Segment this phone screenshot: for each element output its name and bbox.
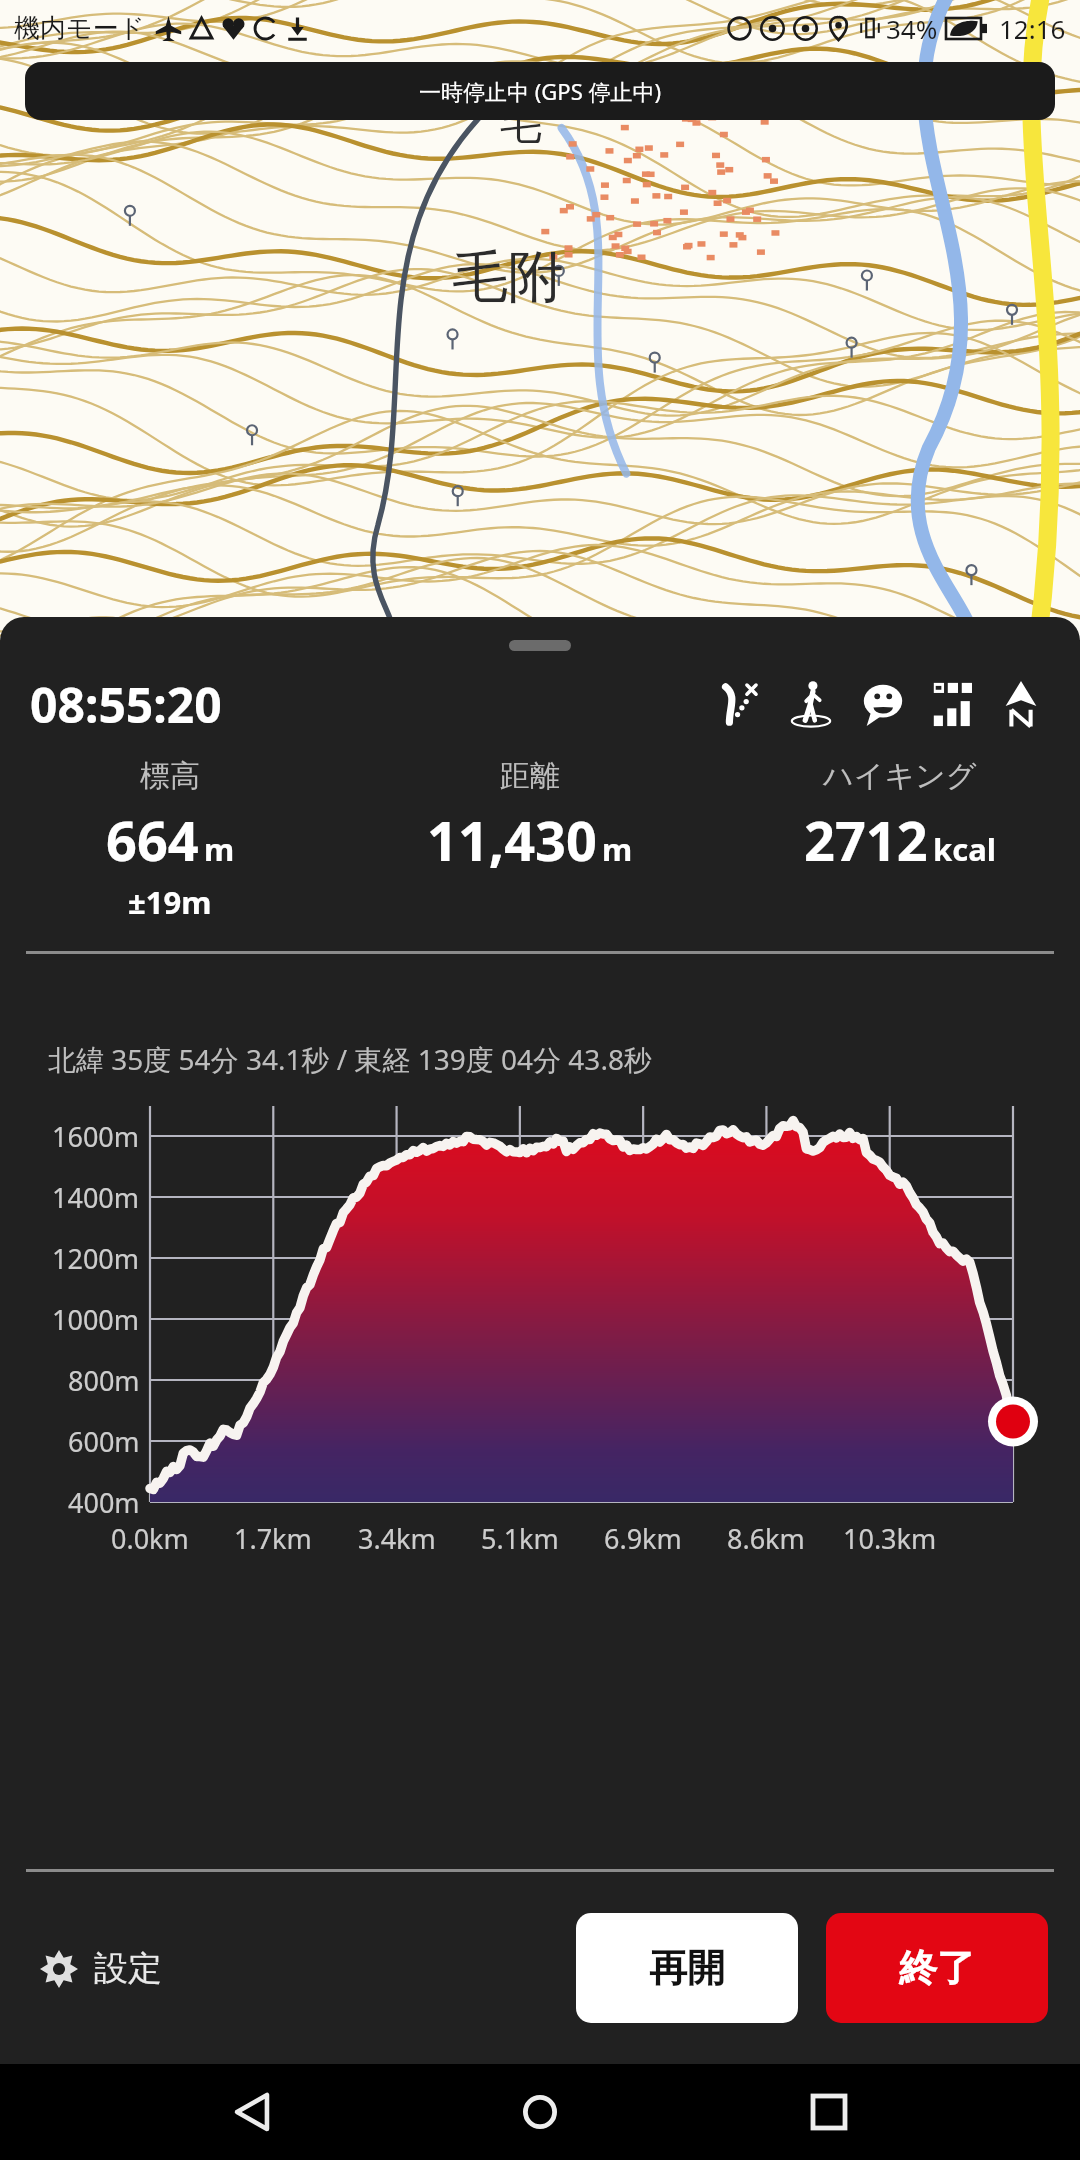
button[interactable]: Recents — [792, 2075, 866, 2149]
staticText: 設定 — [94, 1947, 162, 1990]
button[interactable]: Activity type — [782, 675, 840, 733]
staticText: 毛 — [500, 98, 542, 151]
staticText: 0.0km — [111, 1520, 189, 1557]
button[interactable]: Mood — [854, 675, 912, 733]
button[interactable]: 終了 — [826, 1913, 1048, 2023]
staticText: 8.6km — [727, 1520, 805, 1557]
staticText: 664 — [106, 803, 199, 877]
button[interactable]: Compass north — [992, 675, 1050, 733]
staticText: 機内モード — [14, 12, 146, 45]
staticText: m — [204, 828, 235, 870]
staticText: 1600m — [52, 1118, 140, 1155]
staticText: 再開 — [649, 1944, 725, 1992]
staticText: 12:16 — [999, 11, 1066, 46]
staticText: 毛附 — [452, 242, 564, 313]
staticText: 2712 — [804, 803, 928, 877]
staticText: 1.7km — [234, 1520, 312, 1557]
staticText: 08:55:20 — [30, 672, 222, 737]
staticText: ±19m — [128, 881, 212, 923]
button[interactable]: Back — [215, 2075, 289, 2149]
staticText: 800m — [68, 1362, 140, 1399]
staticText: 400m — [68, 1484, 140, 1521]
staticText: m — [602, 828, 633, 870]
button[interactable]: 一時停止中 (GPS 停止中) — [25, 62, 1055, 120]
button[interactable]: GPS signal — [924, 675, 982, 733]
staticText: 3.4km — [358, 1520, 436, 1557]
staticText: 1000m — [52, 1301, 140, 1338]
staticText: 標高 — [140, 757, 200, 795]
button[interactable]: Route tracking off — [710, 675, 768, 733]
staticText: 5.1km — [481, 1520, 559, 1557]
staticText: ハイキング — [823, 757, 977, 795]
staticText: 距離 — [500, 757, 560, 795]
staticText: 1400m — [52, 1179, 140, 1216]
staticText: kcal — [933, 828, 997, 870]
staticText: 1200m — [52, 1240, 140, 1277]
staticText: 終了 — [899, 1944, 975, 1992]
button[interactable]: 再開 — [576, 1913, 798, 2023]
button[interactable]: 設定 — [32, 1939, 170, 1998]
staticText: 600m — [68, 1423, 140, 1460]
button[interactable]: Home — [503, 2075, 577, 2149]
staticText: 6.9km — [604, 1520, 682, 1557]
staticText: 10.3km — [843, 1520, 937, 1557]
staticText: 34% — [886, 11, 938, 46]
staticText: 11,430 — [427, 803, 597, 877]
staticText: 一時停止中 (GPS 停止中) — [419, 76, 662, 106]
staticText: 北緯 35度 54分 34.1秒 / 東経 139度 04分 43.8秒 — [48, 1040, 652, 1078]
